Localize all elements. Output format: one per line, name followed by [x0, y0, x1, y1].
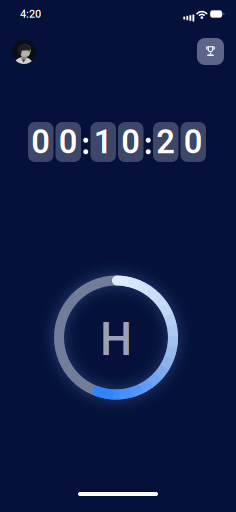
staticText: 0	[31, 123, 50, 161]
staticText: 1	[94, 123, 113, 161]
staticText: 0	[184, 123, 203, 161]
button[interactable]: Profile	[12, 40, 36, 64]
staticText: H	[100, 313, 132, 366]
staticText: 4:20	[20, 8, 41, 20]
staticText: 0	[59, 123, 78, 161]
staticText: 0	[121, 123, 140, 161]
staticText: 2	[156, 123, 175, 161]
button[interactable]: Achievements	[197, 38, 224, 65]
